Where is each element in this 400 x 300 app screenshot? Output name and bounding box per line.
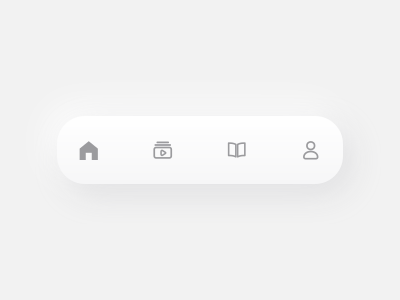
button[interactable]: Home [57, 116, 128, 184]
button[interactable]: Library [200, 116, 271, 184]
button[interactable]: Profile [271, 116, 343, 184]
button[interactable]: Videos [128, 116, 200, 184]
